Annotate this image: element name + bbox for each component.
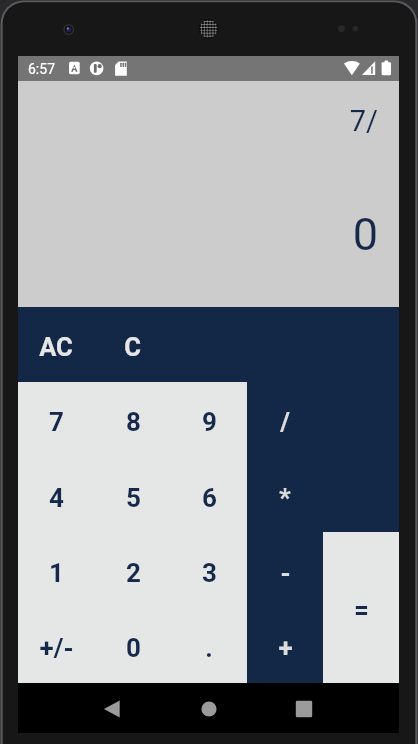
staticText: -: [280, 558, 291, 588]
button[interactable]: 8: [95, 382, 171, 458]
staticText: C: [124, 332, 141, 362]
staticText: 3: [202, 558, 217, 588]
staticText: *: [279, 483, 291, 513]
button[interactable]: 0: [95, 608, 171, 683]
staticText: +: [278, 633, 293, 663]
button[interactable]: 7: [18, 382, 95, 458]
staticText: 7: [49, 407, 64, 437]
staticText: /: [280, 407, 290, 437]
staticText: AC: [39, 332, 73, 362]
button[interactable]: 5: [95, 458, 171, 533]
button[interactable]: -: [247, 533, 323, 608]
staticText: 5: [126, 483, 141, 513]
button[interactable]: +/-: [18, 608, 95, 683]
staticText: .: [205, 633, 213, 663]
staticText: 0: [352, 208, 378, 261]
button[interactable]: Back: [84, 685, 140, 733]
button[interactable]: *: [247, 458, 323, 533]
staticText: 6: [202, 483, 217, 513]
staticText: 6:57: [28, 61, 55, 77]
button[interactable]: 1: [18, 533, 95, 608]
button[interactable]: Home: [181, 685, 237, 733]
button[interactable]: 3: [171, 533, 247, 608]
button[interactable]: +: [247, 608, 323, 683]
button[interactable]: 6: [171, 458, 247, 533]
button[interactable]: C: [94, 307, 170, 382]
staticText: 7/: [349, 104, 378, 138]
staticText: 0: [126, 633, 141, 663]
button[interactable]: AC: [18, 307, 94, 382]
button[interactable]: Recent apps: [276, 685, 332, 733]
button[interactable]: .: [171, 608, 247, 683]
staticText: +/-: [39, 633, 74, 663]
button[interactable]: 4: [18, 458, 95, 533]
staticText: 4: [49, 483, 64, 513]
staticText: 8: [126, 407, 141, 437]
button[interactable]: /: [247, 382, 323, 458]
button[interactable]: 9: [171, 382, 247, 458]
button[interactable]: =: [323, 532, 399, 683]
staticText: =: [354, 595, 369, 625]
staticText: 2: [126, 558, 141, 588]
staticText: 9: [202, 407, 217, 437]
button[interactable]: 2: [95, 533, 171, 608]
staticText: 1: [49, 558, 64, 588]
